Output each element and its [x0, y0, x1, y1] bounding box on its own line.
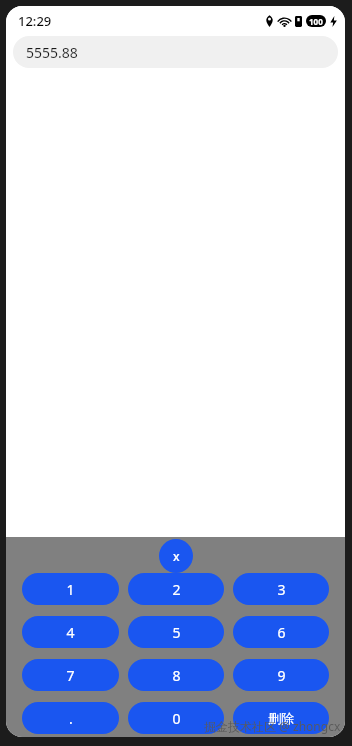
button[interactable]: 删除: [233, 702, 329, 734]
button[interactable]: .: [22, 702, 119, 734]
button[interactable]: 0: [128, 702, 224, 734]
staticText: 7: [66, 666, 75, 685]
staticText: 掘金技术社区 @ zhongcx: [204, 718, 341, 734]
staticText: 12:29: [18, 12, 52, 30]
button[interactable]: 9: [233, 659, 329, 691]
staticText: 5555.88: [26, 43, 78, 62]
staticText: 4: [66, 623, 75, 642]
staticText: 9: [277, 666, 286, 685]
staticText: 6: [277, 623, 286, 642]
button[interactable]: 4: [22, 616, 119, 648]
button[interactable]: 6: [233, 616, 329, 648]
staticText: 8: [172, 666, 181, 685]
staticText: .: [69, 709, 73, 728]
button[interactable]: 2: [128, 573, 224, 605]
staticText: 100: [309, 16, 323, 27]
staticText: 2: [172, 580, 181, 599]
button[interactable]: 5555.88: [13, 36, 338, 68]
button[interactable]: 5: [128, 616, 224, 648]
staticText: 3: [277, 580, 286, 599]
staticText: 5: [172, 623, 181, 642]
button[interactable]: 7: [22, 659, 119, 691]
staticText: 0: [172, 709, 181, 728]
button[interactable]: 8: [128, 659, 224, 691]
button[interactable]: 3: [233, 573, 329, 605]
staticText: x: [173, 548, 180, 564]
button[interactable]: Close keypad: [159, 539, 193, 573]
staticText: 删除: [268, 710, 294, 726]
staticText: 1: [66, 580, 75, 599]
button[interactable]: 1: [22, 573, 119, 605]
